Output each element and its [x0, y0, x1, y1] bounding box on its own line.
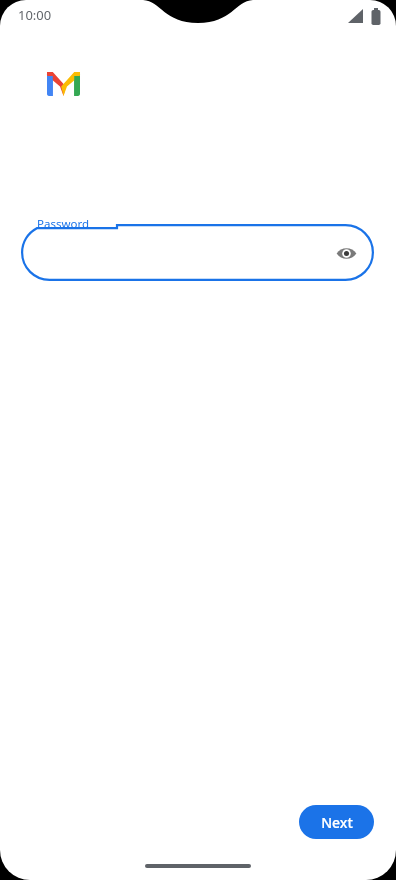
button[interactable]: Show password: [330, 237, 362, 269]
button[interactable]: Show password: [21, 224, 374, 281]
staticText: Password: [37, 216, 90, 232]
staticText: Next: [321, 813, 353, 832]
staticText: 10:00: [18, 6, 52, 24]
button[interactable]: Next: [299, 805, 374, 839]
